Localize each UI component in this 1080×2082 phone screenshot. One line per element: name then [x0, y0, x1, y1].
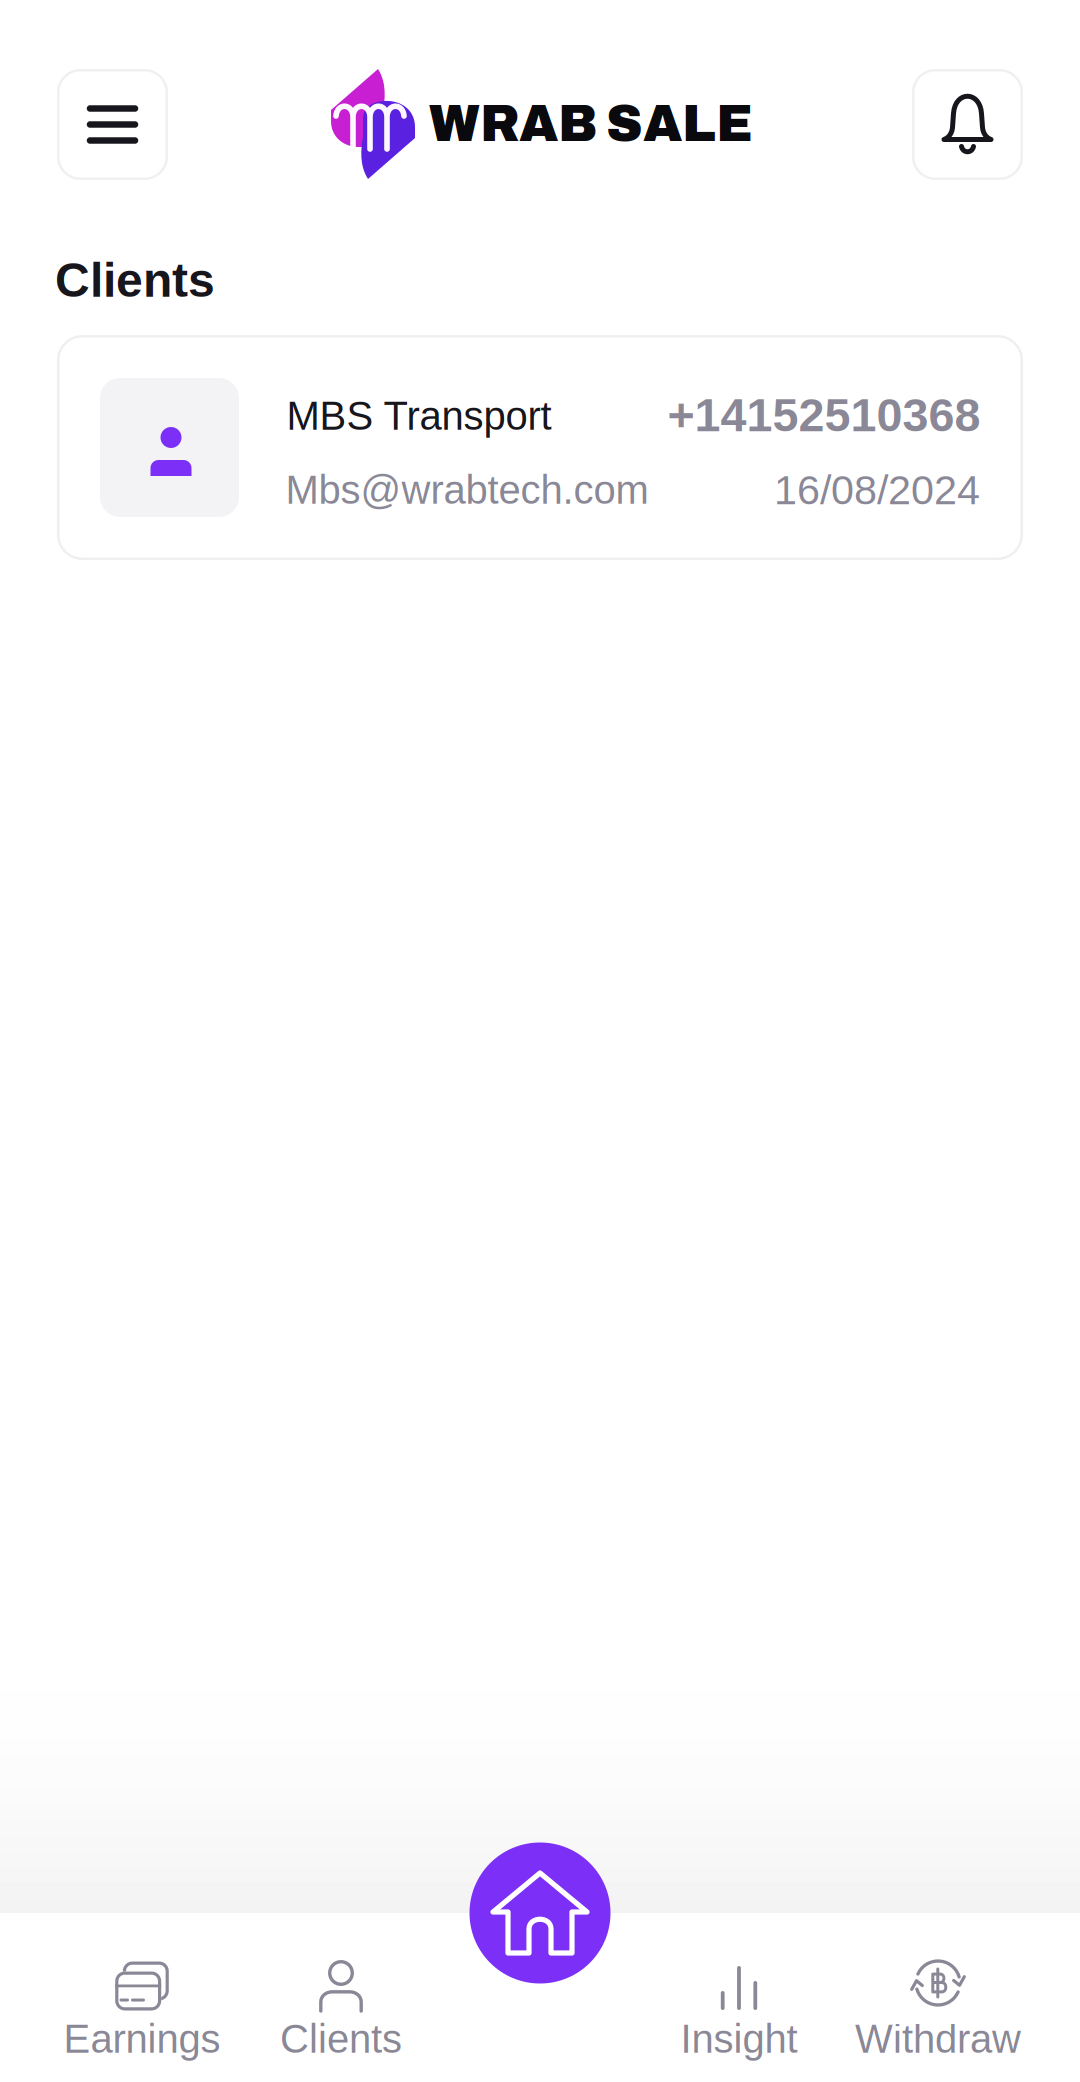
button[interactable]: MBS Transport	[57, 335, 1023, 560]
staticText: Clients	[280, 2017, 402, 2061]
button[interactable]: Withdraw	[828, 1930, 1048, 2076]
button[interactable]: Clients	[231, 1930, 451, 2076]
staticText: Clients	[55, 253, 215, 307]
staticText: 16/08/2024	[774, 467, 980, 513]
staticText: +14152510368	[667, 389, 980, 441]
button[interactable]: Menu	[57, 69, 168, 180]
staticText: Earnings	[63, 2017, 220, 2061]
staticText: MBS Transport	[286, 394, 551, 438]
button[interactable]: Notifications	[912, 69, 1023, 180]
staticText: Withdraw	[855, 2017, 1021, 2061]
button[interactable]: Insight	[629, 1930, 849, 2076]
staticText: WRAB SALE	[429, 96, 753, 151]
button[interactable]: Earnings	[32, 1930, 252, 2076]
staticText: Insight	[680, 2017, 797, 2061]
staticText: Mbs@wrabtech.com	[285, 468, 648, 512]
button[interactable]: Home	[469, 1842, 610, 1983]
